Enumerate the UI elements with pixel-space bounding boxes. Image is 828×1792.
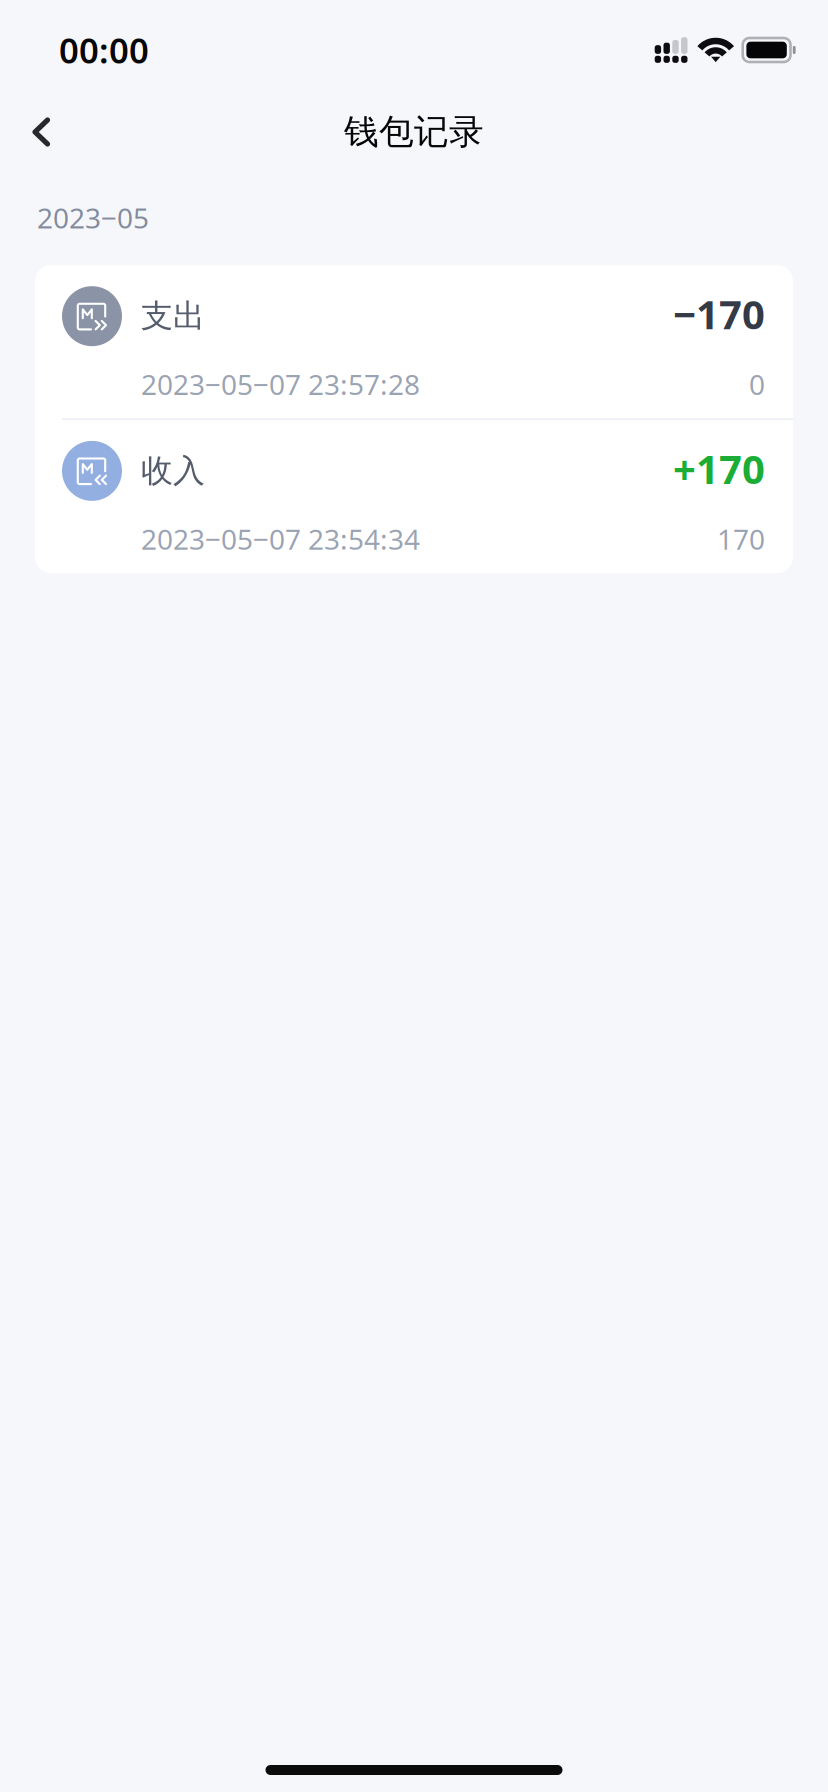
staticText: 2023−05−07 23:57:28 xyxy=(141,366,420,403)
staticText: 收入 xyxy=(141,451,205,490)
staticText: 2023−05 xyxy=(37,199,149,236)
button[interactable]: Back xyxy=(10,100,74,164)
staticText: 0 xyxy=(749,366,765,403)
staticText: 钱包记录 xyxy=(344,111,484,153)
staticText: 170 xyxy=(717,520,765,557)
staticText: 00:00 xyxy=(59,27,149,73)
staticText: 支出 xyxy=(141,296,205,336)
button[interactable]: 支出 xyxy=(35,265,793,418)
staticText: +170 xyxy=(673,442,765,495)
staticText: −170 xyxy=(673,287,765,340)
staticText: 2023−05−07 23:54:34 xyxy=(141,520,420,557)
button[interactable]: 收入 xyxy=(35,420,793,573)
